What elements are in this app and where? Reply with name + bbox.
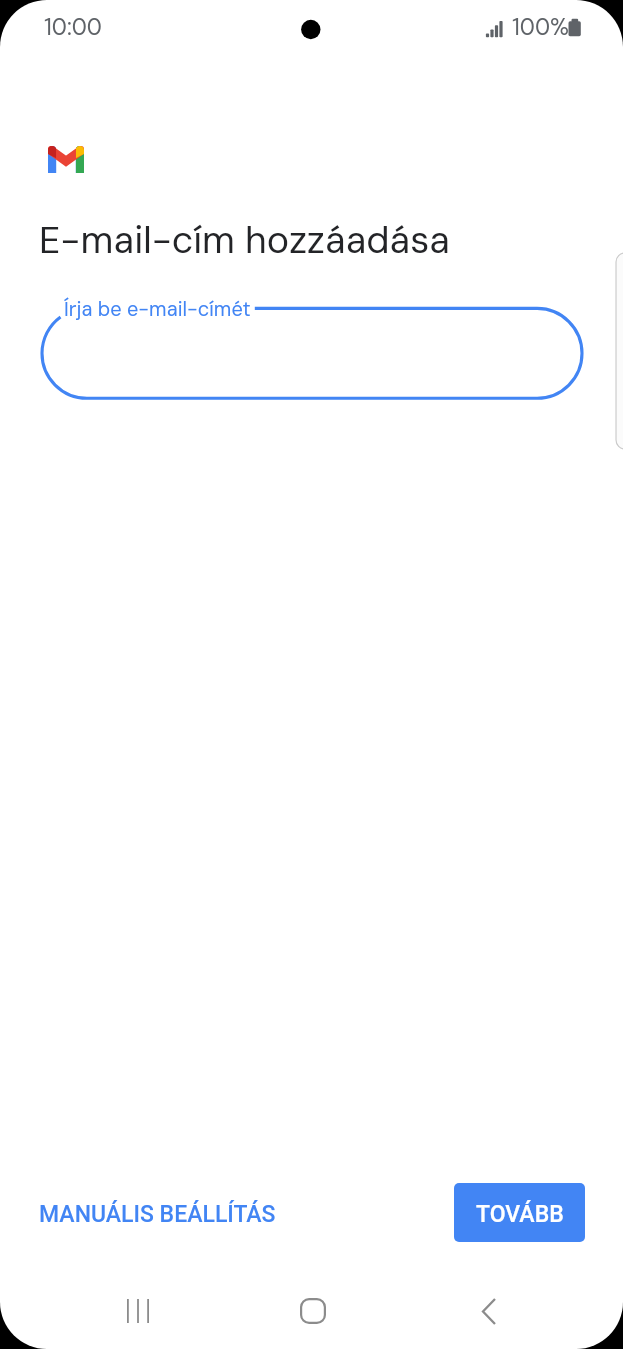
- staticText: TOVÁBB: [476, 1201, 564, 1228]
- button[interactable]: Back: [449, 1271, 529, 1349]
- staticText: 10:00: [44, 12, 102, 42]
- button[interactable]: MANUÁLIS BEÁLLÍTÁS: [39, 1195, 276, 1234]
- staticText: 100%: [512, 12, 569, 42]
- staticText: MANUÁLIS BEÁLLÍTÁS: [39, 1201, 276, 1228]
- button[interactable]: TOVÁBB: [454, 1183, 585, 1242]
- button[interactable]: Home: [273, 1271, 353, 1349]
- staticText: E-mail-cím hozzáadása: [39, 216, 450, 265]
- button[interactable]: Recent apps: [98, 1271, 178, 1349]
- staticText: Írja be e-mail-címét: [64, 296, 251, 322]
- button[interactable]: Írja be e-mail-címét: [42, 300, 587, 410]
